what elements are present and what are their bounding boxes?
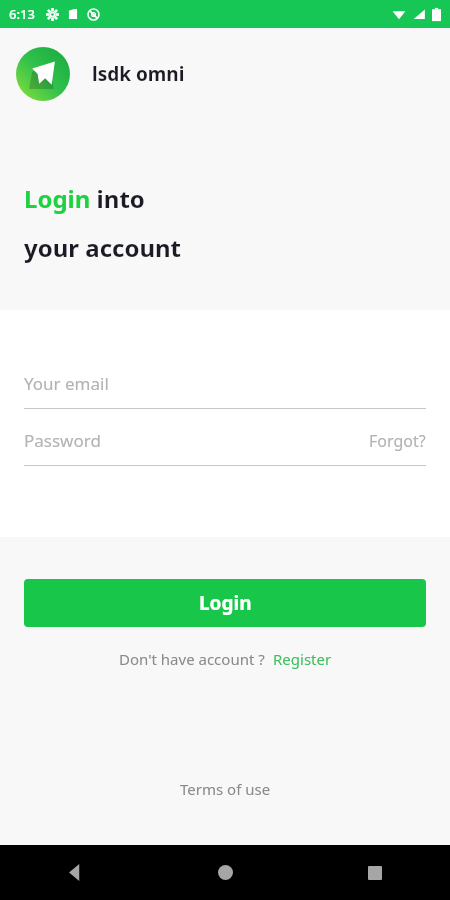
staticText: lsdk omni: [92, 61, 185, 87]
staticText: 6:13: [9, 5, 35, 23]
staticText: Forgot?: [369, 430, 426, 452]
staticText: Your email: [24, 372, 109, 395]
button[interactable]: Forgot?: [369, 430, 426, 452]
button[interactable]: Back: [0, 845, 150, 900]
staticText: your account: [24, 231, 182, 264]
button[interactable]: Your email: [24, 372, 426, 409]
button[interactable]: Login: [24, 579, 426, 627]
staticText: Login into: [24, 182, 145, 215]
staticText: Login: [199, 590, 252, 616]
button[interactable]: Recent apps: [300, 845, 450, 900]
staticText: Terms of use: [180, 779, 271, 799]
staticText: Password: [24, 429, 101, 452]
button[interactable]: Home: [150, 845, 300, 900]
button[interactable]: Register: [273, 649, 332, 669]
staticText: Register: [273, 649, 332, 669]
staticText: Don't have account ?: [119, 649, 265, 669]
button[interactable]: Password: [24, 429, 426, 466]
button[interactable]: Terms of use: [174, 773, 277, 805]
